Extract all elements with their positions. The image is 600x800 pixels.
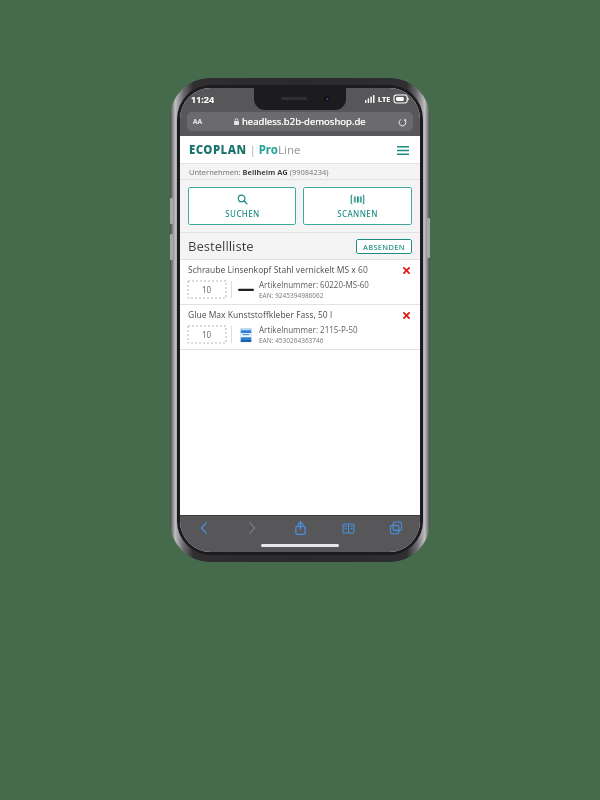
button[interactable]: Tabs <box>382 516 410 540</box>
staticText: Bestellliste <box>188 237 254 255</box>
staticText: 10 <box>202 284 212 295</box>
button[interactable]: Entfernen <box>400 264 412 276</box>
button[interactable]: Schraube Linsenkopf Stahl vernickelt MS … <box>180 260 420 304</box>
staticText: Artikelnummer: 60220-MS-60 <box>259 279 369 290</box>
staticText: Glue Max Kunststoffkleber Fass, 50 l <box>188 309 400 321</box>
staticText: headless.b2b-demoshop.de <box>242 115 366 128</box>
button[interactable]: Menu <box>395 142 411 158</box>
staticText: LTE <box>378 94 391 104</box>
staticText: AA <box>193 117 203 127</box>
button[interactable]: 10 <box>188 326 226 343</box>
staticText: Artikelnummer: 2115-P-50 <box>259 324 358 335</box>
button[interactable]: Glue Max Kunststoffkleber Fass, 50 l <box>180 305 420 349</box>
staticText: EAN: 4530264363746 <box>259 336 324 345</box>
staticText: 11:24 <box>191 93 215 105</box>
button[interactable]: Entfernen <box>400 309 412 321</box>
button[interactable]: Reload <box>397 117 407 127</box>
button[interactable]: 10 <box>188 281 226 298</box>
staticText: ECOPLAN | ProLine <box>189 142 301 158</box>
button[interactable]: Share <box>286 516 314 540</box>
staticText: SUCHEN <box>225 208 260 219</box>
button[interactable]: Back <box>190 516 218 540</box>
button[interactable]: ABSENDEN <box>356 239 412 254</box>
button[interactable]: SCANNEN <box>303 187 412 225</box>
staticText: EAN: 9245394986062 <box>259 291 324 300</box>
button[interactable]: SUCHEN <box>188 187 296 225</box>
button[interactable]: AA <box>187 112 413 131</box>
staticText: Schraube Linsenkopf Stahl vernickelt MS … <box>188 264 400 276</box>
staticText: 10 <box>202 329 212 340</box>
staticText: SCANNEN <box>337 208 378 219</box>
staticText: Unternehmen: Bellheim AG (99084234) <box>189 167 329 177</box>
staticText: ABSENDEN <box>363 242 405 252</box>
button[interactable]: Bookmarks <box>334 516 362 540</box>
button[interactable]: Forward <box>238 516 266 540</box>
